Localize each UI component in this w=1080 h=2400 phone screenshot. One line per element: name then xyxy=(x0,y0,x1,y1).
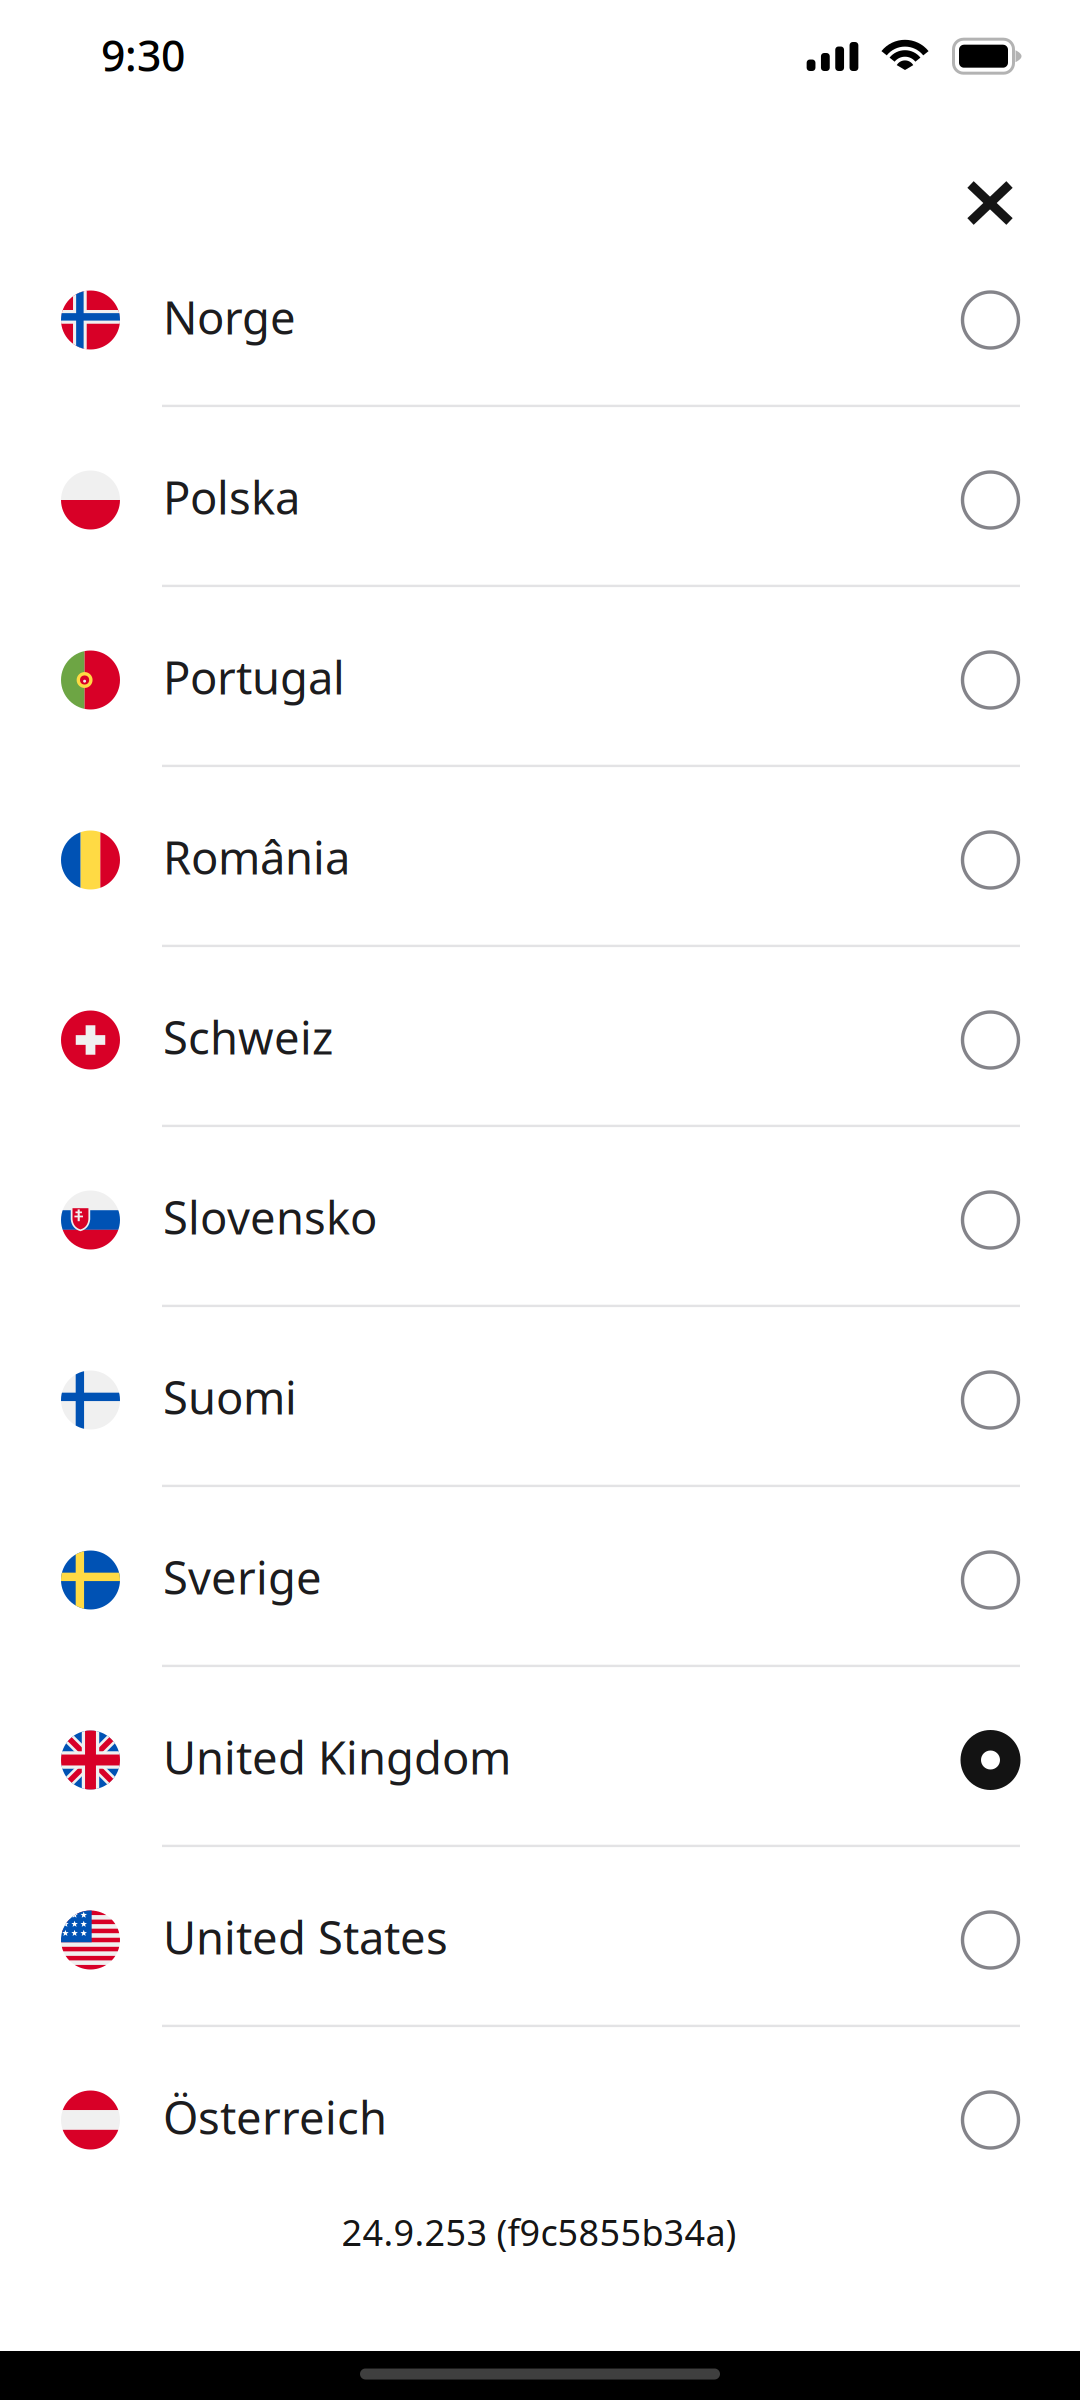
staticText: Polska xyxy=(163,467,300,527)
staticText: 9:30 xyxy=(101,27,185,83)
staticText: Slovensko xyxy=(163,1187,377,1247)
button[interactable]: United States xyxy=(0,1850,1080,2030)
staticText: 24.9.253 (f9c5855b34a) xyxy=(341,2208,736,2256)
button[interactable]: România xyxy=(0,770,1080,950)
staticText: Österreich xyxy=(163,2087,387,2147)
button[interactable]: Suomi xyxy=(0,1310,1080,1490)
staticText: Suomi xyxy=(163,1367,297,1427)
button[interactable]: Polska xyxy=(0,410,1080,590)
button[interactable]: Slovensko xyxy=(0,1130,1080,1310)
staticText: Sverige xyxy=(163,1547,322,1607)
staticText: România xyxy=(163,827,350,887)
button[interactable]: Österreich xyxy=(0,2030,1080,2210)
button[interactable]: United Kingdom xyxy=(0,1670,1080,1850)
staticText: United Kingdom xyxy=(163,1727,511,1787)
button[interactable]: Schweiz xyxy=(0,950,1080,1130)
button[interactable]: Norge xyxy=(0,230,1080,410)
button[interactable]: Sverige xyxy=(0,1490,1080,1670)
staticText: Norge xyxy=(163,287,296,347)
staticText: Schweiz xyxy=(163,1007,333,1067)
staticText: United States xyxy=(163,1907,448,1967)
button[interactable]: Portugal xyxy=(0,590,1080,770)
staticText: Portugal xyxy=(163,647,345,707)
button[interactable]: Close xyxy=(930,143,1050,263)
